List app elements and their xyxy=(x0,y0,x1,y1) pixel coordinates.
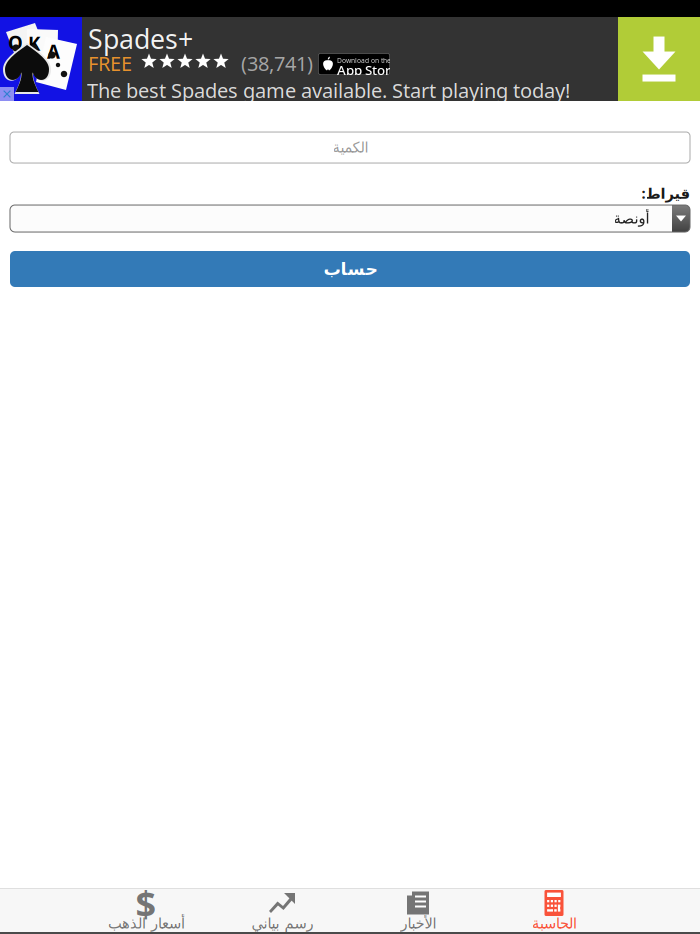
staticText: K xyxy=(28,31,40,56)
staticText: App Store xyxy=(337,61,398,79)
staticText: أسعار الذهب xyxy=(107,915,184,932)
staticText: A xyxy=(47,39,60,64)
button[interactable]: رسم بياني xyxy=(214,889,350,932)
button[interactable]: حساب xyxy=(0,251,700,287)
staticText: Download on the xyxy=(337,56,391,65)
button[interactable]: الأخبار xyxy=(350,889,486,932)
button[interactable]: Q xyxy=(0,17,700,101)
button[interactable]: أونصة xyxy=(0,205,700,232)
staticText: أونصة xyxy=(613,210,649,227)
staticText: $ xyxy=(135,879,156,927)
staticText: The best Spades game available. Start pl… xyxy=(87,77,570,104)
staticText: (38,741) xyxy=(241,50,313,77)
button[interactable]: $ xyxy=(78,889,214,932)
staticText: الحاسبة xyxy=(531,915,576,932)
staticText: Q xyxy=(8,30,23,55)
staticText: حساب xyxy=(323,259,377,279)
staticText: قيراط: xyxy=(641,183,690,203)
staticText: رسم بياني xyxy=(251,915,313,932)
staticText: الأخبار xyxy=(400,915,436,932)
staticText: FREE xyxy=(88,50,132,77)
button[interactable]: الحاسبة xyxy=(486,889,622,932)
staticText: Spades+ xyxy=(88,21,193,56)
staticText: الكمية xyxy=(332,139,368,156)
